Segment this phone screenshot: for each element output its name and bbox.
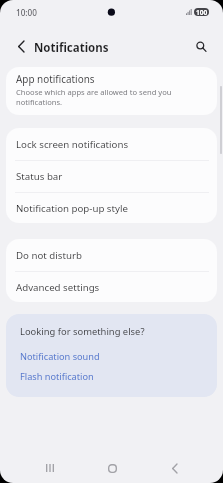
staticText: Flash notification — [20, 370, 94, 383]
staticText: Choose which apps are allowed to send yo… — [16, 87, 207, 107]
button[interactable]: Recent apps — [39, 457, 61, 479]
button[interactable]: Back — [163, 457, 185, 479]
staticText: 100 — [196, 8, 208, 16]
button[interactable]: App notifications — [6, 67, 217, 115]
button[interactable]: Home — [101, 457, 123, 479]
button[interactable]: Status bar — [6, 161, 217, 192]
button[interactable]: Search — [189, 35, 212, 58]
staticText: Lock screen notifications — [16, 138, 129, 151]
button[interactable]: Do not disturb — [6, 239, 217, 271]
button[interactable]: Lock screen notifications — [6, 128, 217, 160]
button[interactable]: Back — [9, 35, 32, 58]
staticText: Do not disturb — [16, 249, 82, 262]
staticText: 10:00 — [16, 7, 37, 18]
staticText: Looking for something else? — [20, 325, 145, 338]
staticText: Notifications — [34, 40, 109, 56]
button[interactable]: Notification sound — [6, 346, 217, 366]
staticText: Notification pop-up style — [16, 202, 128, 215]
staticText: Notification sound — [20, 350, 100, 363]
staticText: Advanced settings — [16, 281, 100, 294]
staticText: Status bar — [16, 170, 63, 183]
button[interactable]: Advanced settings — [6, 272, 217, 302]
button[interactable]: Flash notification — [6, 366, 217, 386]
staticText: App notifications — [16, 72, 95, 85]
button[interactable]: Notification pop-up style — [6, 193, 217, 223]
